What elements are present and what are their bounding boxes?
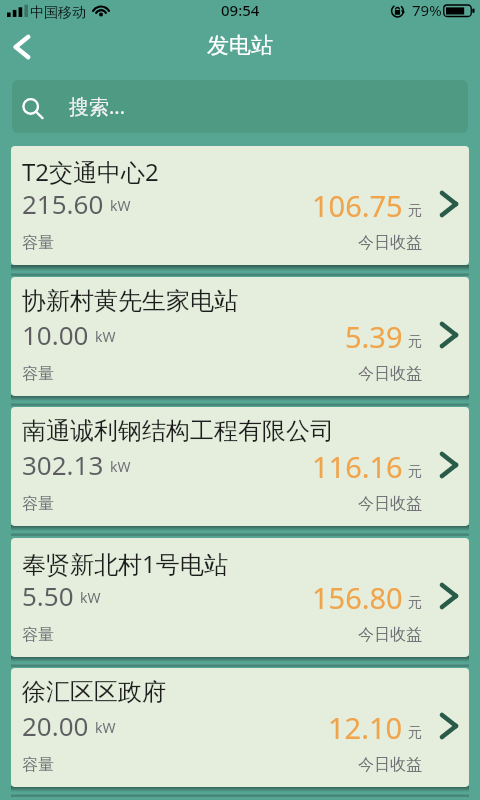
button[interactable]: Back — [2, 27, 42, 67]
staticText: 容量 — [22, 233, 54, 253]
staticText: 搜索... — [69, 93, 126, 120]
staticText: 今日收益 — [358, 364, 422, 384]
button[interactable]: 协新村黄先生家电站 — [11, 277, 469, 396]
staticText: 106.75 — [312, 186, 403, 225]
button[interactable]: 奉贤新北村1号电站 — [11, 538, 469, 657]
staticText: 徐汇区区政府 — [22, 677, 166, 707]
staticText: 今日收益 — [358, 755, 422, 775]
staticText: 156.80 — [312, 578, 403, 617]
staticText: 协新村黄先生家电站 — [22, 286, 238, 316]
staticText: 09:54 — [221, 0, 260, 20]
staticText: 今日收益 — [358, 233, 422, 253]
staticText: 10.00 — [22, 317, 89, 352]
staticText: 今日收益 — [358, 625, 422, 645]
staticText: 元 — [408, 463, 422, 481]
staticText: 20.00 — [22, 708, 89, 743]
staticText: 元 — [408, 202, 422, 220]
button[interactable]: 南通诚利钢结构工程有限公司 — [11, 407, 469, 526]
staticText: 奉贤新北村1号电站 — [22, 547, 228, 580]
staticText: kW — [110, 196, 131, 215]
staticText: kW — [95, 327, 116, 346]
staticText: 容量 — [22, 625, 54, 645]
staticText: T2交通中心2 — [22, 155, 159, 188]
staticText: 215.60 — [22, 186, 104, 221]
staticText: 12.10 — [328, 708, 403, 747]
staticText: kW — [110, 457, 131, 476]
staticText: 南通诚利钢结构工程有限公司 — [22, 416, 334, 446]
button[interactable]: 徐汇区区政府 — [11, 668, 469, 787]
staticText: 302.13 — [22, 447, 104, 482]
button[interactable]: T2交通中心2 — [11, 146, 469, 265]
staticText: 5.39 — [345, 317, 403, 356]
staticText: 中国移动 — [30, 4, 86, 22]
staticText: 5.50 — [22, 578, 74, 613]
staticText: 116.16 — [312, 447, 403, 486]
staticText: 元 — [408, 594, 422, 612]
staticText: 容量 — [22, 364, 54, 384]
staticText: kW — [80, 588, 101, 607]
staticText: 容量 — [22, 494, 54, 514]
staticText: 容量 — [22, 755, 54, 775]
staticText: kW — [95, 718, 116, 737]
staticText: 元 — [408, 724, 422, 742]
staticText: 元 — [408, 333, 422, 351]
staticText: 发电站 — [0, 32, 480, 60]
staticText: 今日收益 — [358, 494, 422, 514]
staticText: 79% — [412, 0, 442, 20]
button[interactable]: 搜索... — [12, 80, 468, 133]
